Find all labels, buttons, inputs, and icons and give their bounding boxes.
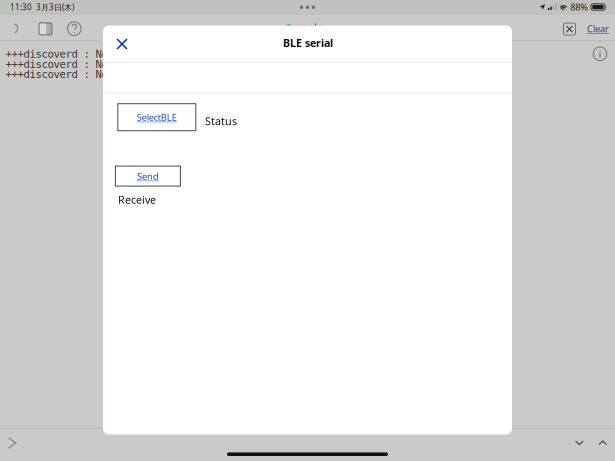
staticText: +++discoverd : None: [5, 68, 119, 80]
button[interactable]: Clear: [587, 20, 609, 37]
button[interactable]: Help: [65, 20, 83, 38]
staticText: BLE serial: [283, 36, 333, 50]
button[interactable]: Close: [109, 31, 135, 57]
button[interactable]: Run: [9, 19, 24, 37]
staticText: +++discoverd : None: [5, 48, 119, 60]
staticText: Send: [137, 170, 159, 182]
button[interactable]: Send: [115, 166, 180, 186]
staticText: Console: [285, 21, 322, 33]
button[interactable]: Scroll down: [570, 435, 588, 451]
button[interactable]: Toggle Sidebar: [36, 20, 54, 38]
button[interactable]: SelectBLE: [118, 104, 196, 131]
staticText: Clear: [587, 22, 609, 35]
staticText: Receive: [118, 193, 156, 207]
button[interactable]: Info: [591, 45, 609, 63]
staticText: 88%: [570, 1, 588, 13]
staticText: SelectBLE: [137, 111, 177, 123]
staticText: Status: [205, 114, 237, 128]
button[interactable]: Prompt: [3, 434, 21, 452]
button[interactable]: Scroll up: [594, 435, 612, 451]
button[interactable]: Stop output: [561, 21, 578, 38]
staticText: +++discoverd : None: [5, 58, 119, 70]
staticText: 11:30 3月3日(木): [10, 2, 74, 12]
